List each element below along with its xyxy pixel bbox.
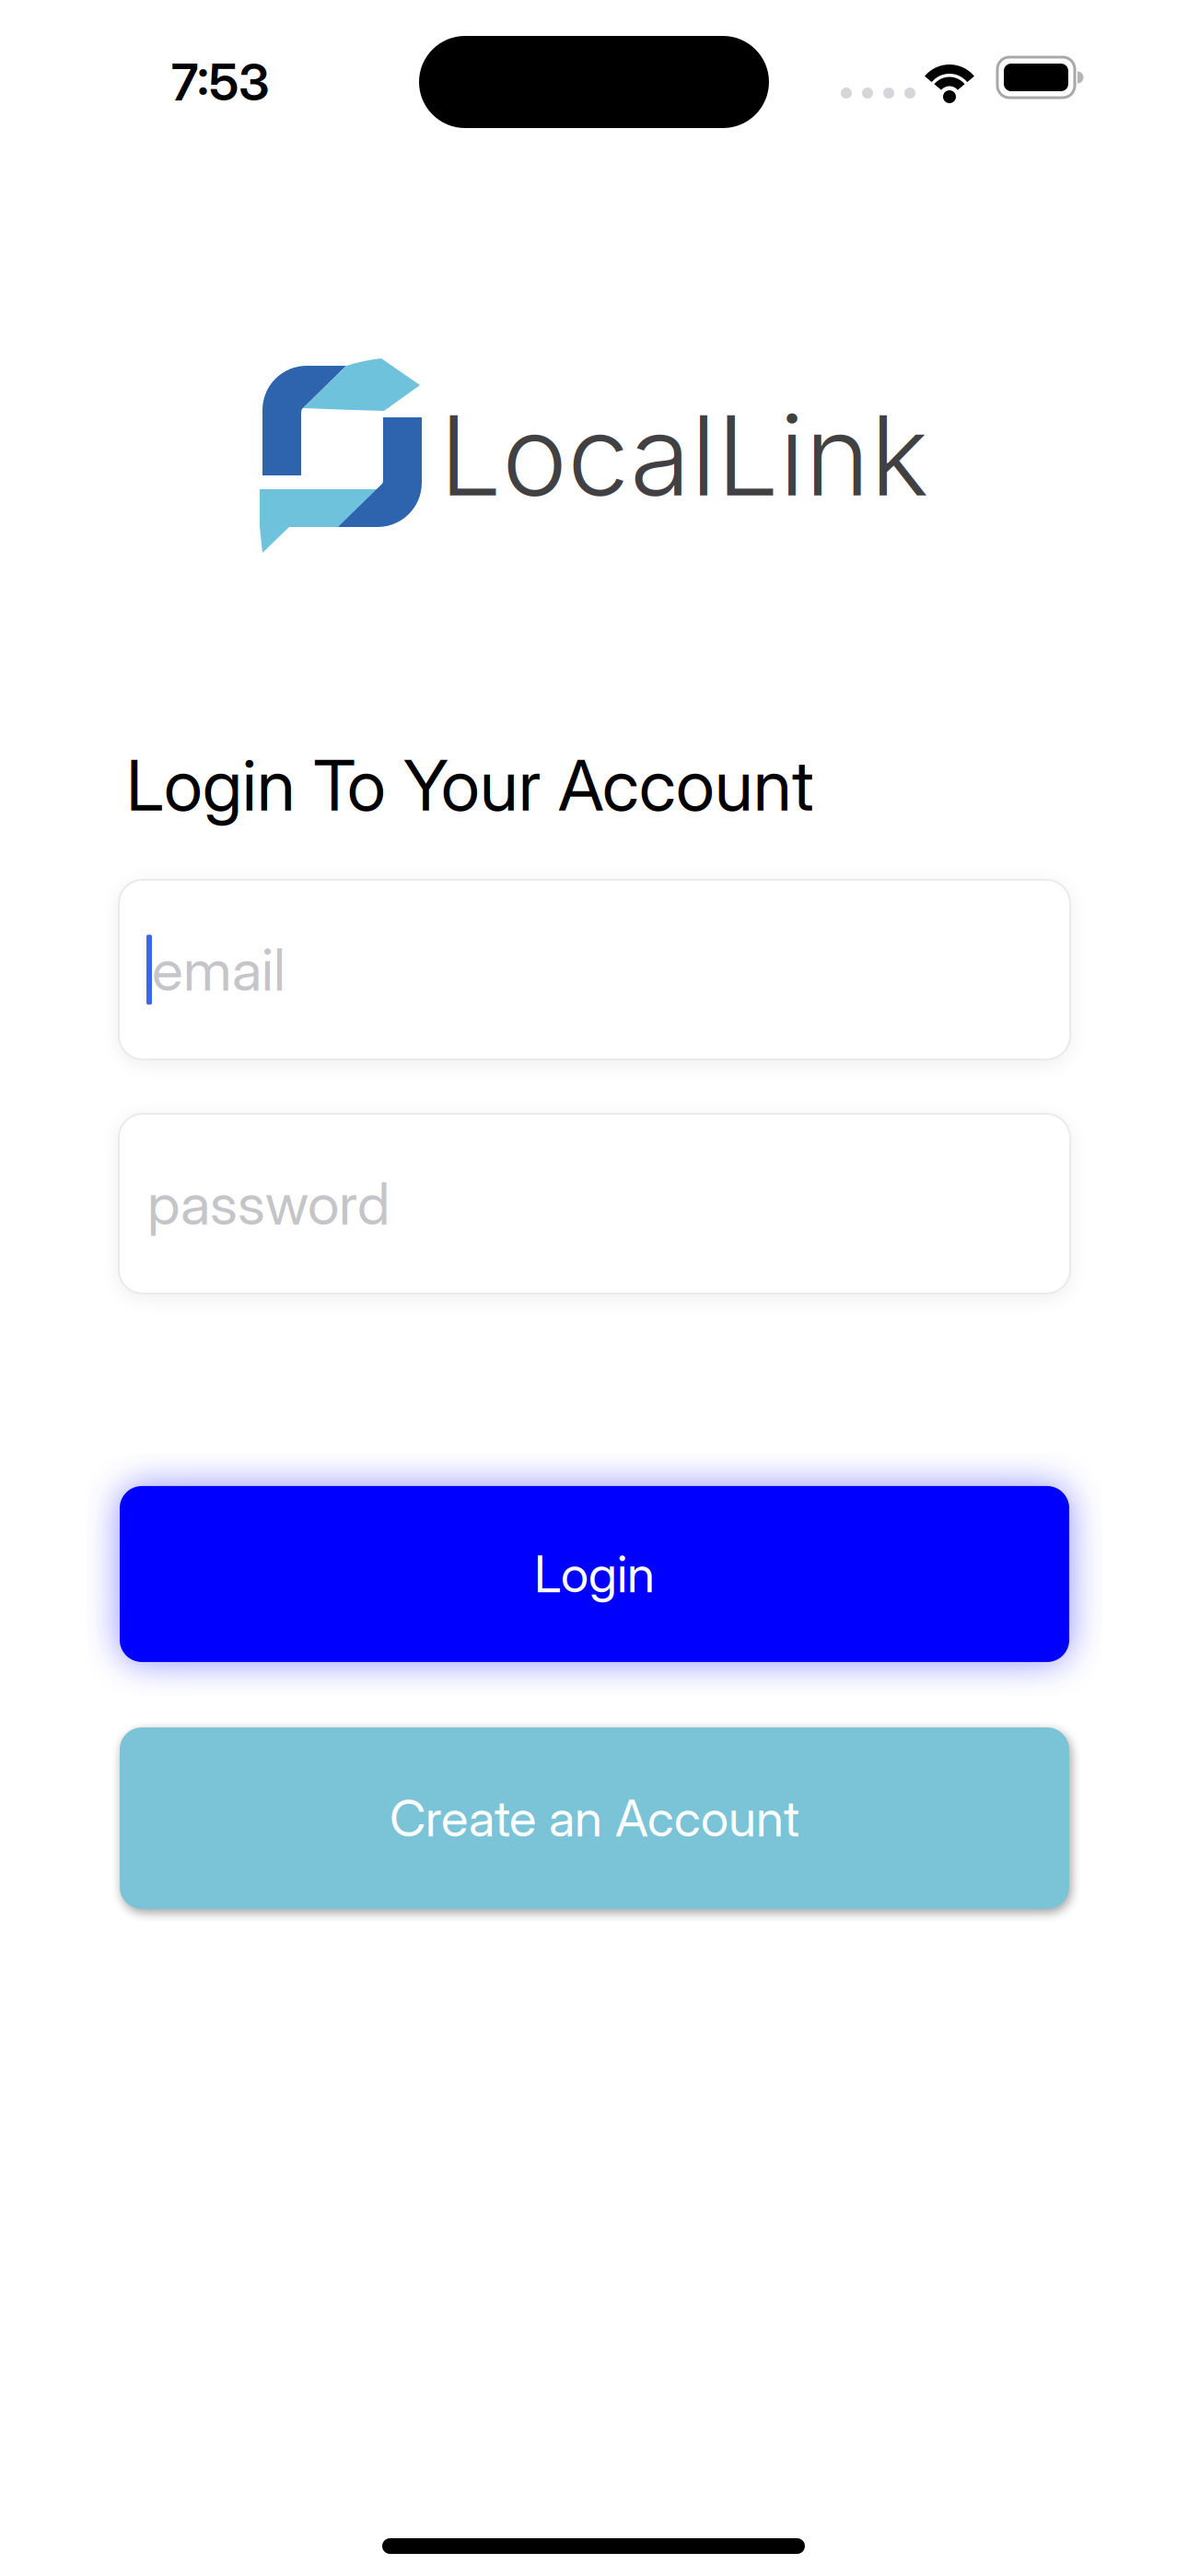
button[interactable]: Create an Account — [120, 1727, 1069, 1909]
staticText: Login — [534, 1544, 655, 1604]
staticText: LocalLink — [439, 388, 928, 522]
staticText: email — [152, 935, 285, 1005]
button[interactable]: Login — [120, 1486, 1069, 1662]
staticText: Create an Account — [390, 1788, 799, 1849]
staticText: password — [147, 1169, 390, 1239]
staticText: 7:53 — [171, 52, 270, 112]
staticText: Login To Your Account — [126, 743, 814, 827]
